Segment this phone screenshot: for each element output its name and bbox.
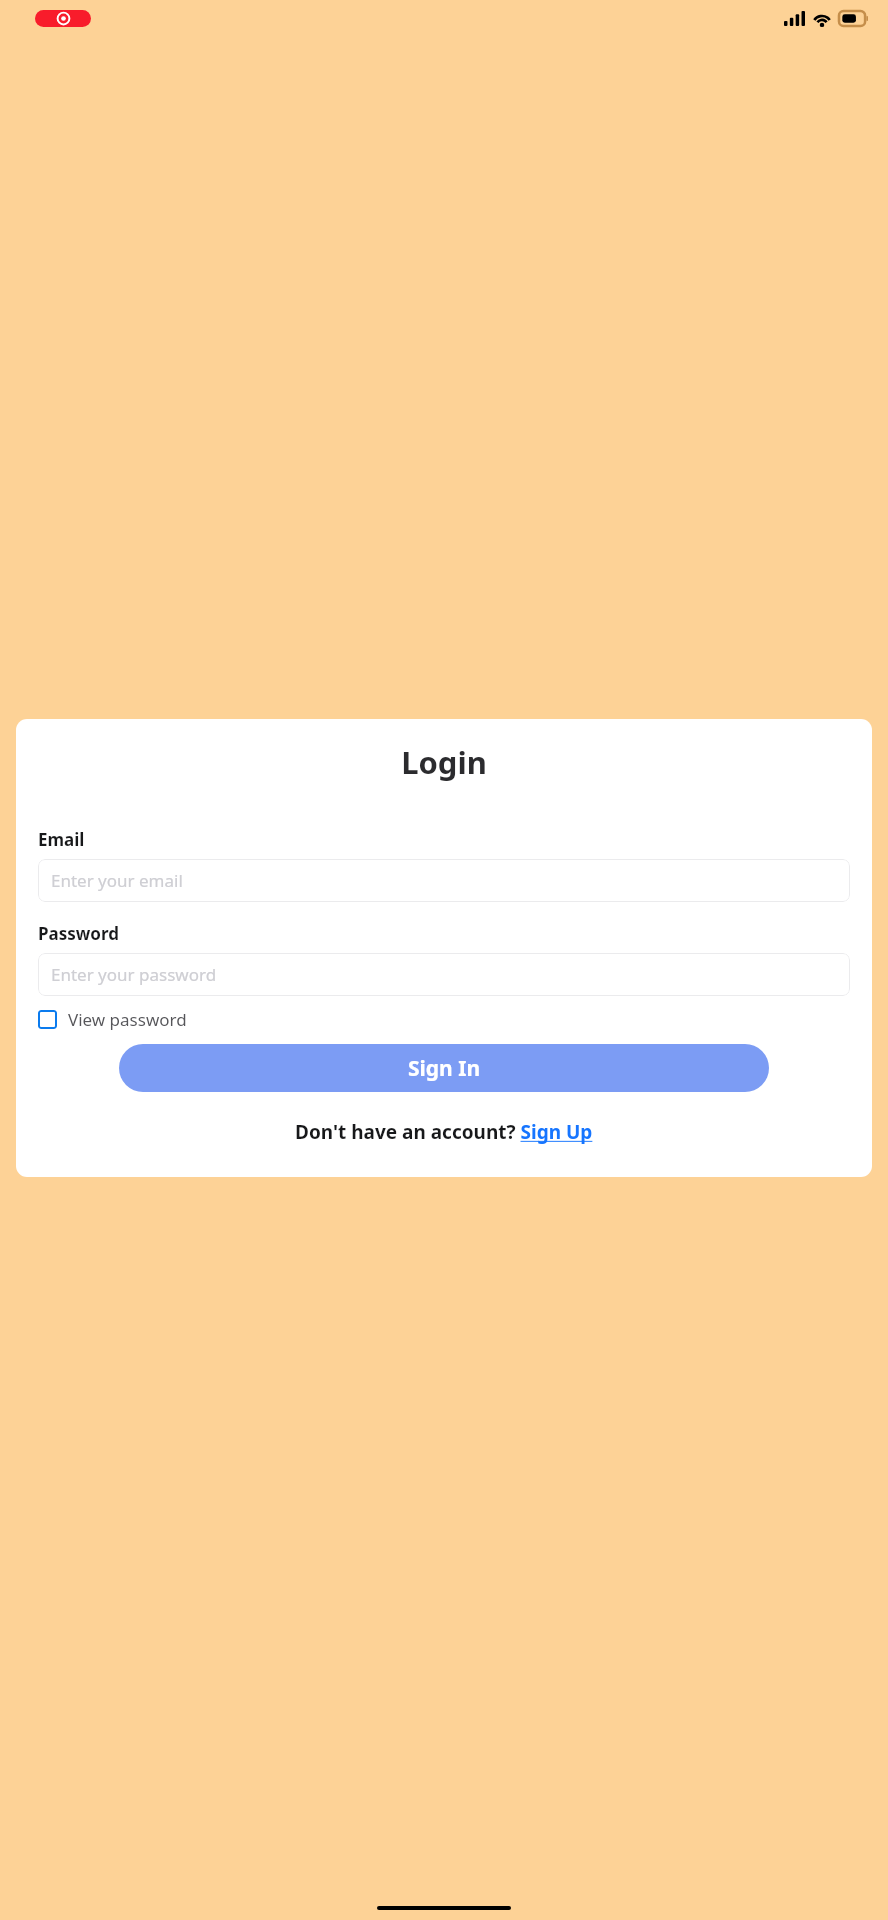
staticText: Enter your password (51, 963, 217, 986)
button[interactable]: Screen recording (35, 10, 91, 27)
staticText: Don't have an account? Sign Up (295, 1119, 593, 1145)
staticText: Enter your email (51, 869, 183, 892)
staticText: Login (38, 741, 850, 783)
staticText: Password (38, 922, 119, 945)
button[interactable]: Enter your password (38, 953, 850, 996)
button[interactable]: View password (38, 1005, 187, 1034)
button[interactable]: Don't have an account? Sign Up (38, 1119, 850, 1145)
staticText: Sign In (408, 1054, 481, 1083)
button[interactable]: Sign In (119, 1044, 769, 1092)
button[interactable]: Enter your email (38, 859, 850, 902)
staticText: Email (38, 828, 85, 851)
staticText: View password (68, 1008, 187, 1031)
